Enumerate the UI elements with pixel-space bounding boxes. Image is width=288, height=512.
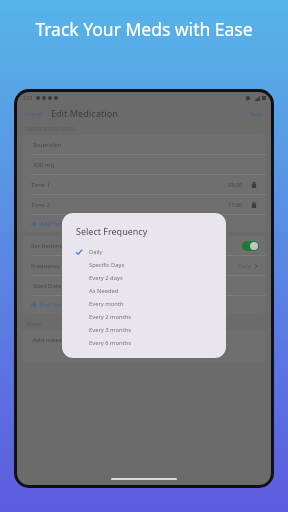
staticText: Every 3 months xyxy=(89,326,132,334)
button[interactable]: Time 1 xyxy=(22,175,266,194)
button[interactable]: Delete time xyxy=(249,180,258,189)
button[interactable]: Start Date xyxy=(22,276,266,295)
staticText: Daily xyxy=(89,248,103,256)
staticText: Frequency xyxy=(31,262,61,270)
staticText: End Date xyxy=(40,301,66,309)
staticText: Every 2 months xyxy=(89,313,132,321)
button[interactable]: Add notes xyxy=(22,330,266,349)
staticText: Every 6 months xyxy=(89,339,132,347)
button[interactable]: Save xyxy=(249,109,264,118)
staticText: Time 2 xyxy=(31,201,50,209)
staticText: Edit Medication xyxy=(51,107,118,119)
staticText: Start Date xyxy=(33,282,62,290)
staticText: Every month xyxy=(89,300,124,308)
staticText: Specific Days xyxy=(89,261,125,269)
button[interactable]: Every 2 months xyxy=(76,310,226,323)
button[interactable]: Add Time xyxy=(22,215,266,232)
staticText: MEDICATION INFO xyxy=(26,125,75,132)
staticText: Every 2 days xyxy=(89,274,123,282)
staticText: Daily xyxy=(238,262,251,269)
button[interactable]: Every 3 months xyxy=(76,323,226,336)
button[interactable]: Every 6 months xyxy=(76,336,226,349)
staticText: 400 mg xyxy=(33,161,55,169)
staticText: Notes xyxy=(26,320,42,327)
staticText: Add notes xyxy=(33,336,62,344)
button[interactable]: Time 2 xyxy=(22,195,266,214)
staticText: Select Frequency xyxy=(76,225,148,237)
staticText: 17:00 xyxy=(228,201,243,208)
button[interactable]: Specific Days xyxy=(76,258,226,271)
staticText: 2:51 xyxy=(23,95,33,102)
staticText: Save xyxy=(250,110,263,117)
button[interactable]: Every 2 days xyxy=(76,271,226,284)
staticText: Set Reminders xyxy=(31,242,72,250)
button[interactable]: Cancel xyxy=(24,109,44,118)
button[interactable]: Frequency xyxy=(22,256,266,275)
button[interactable]: Set Reminders xyxy=(22,236,266,255)
button[interactable]: As Needed xyxy=(76,284,226,297)
button[interactable]: Every month xyxy=(76,297,226,310)
button[interactable]: End Date xyxy=(22,296,266,313)
staticText: Ibuprofen xyxy=(33,141,62,149)
staticText: Track Your Meds with Ease xyxy=(18,17,270,41)
staticText: Time 1 xyxy=(31,181,50,189)
staticText: Cancel xyxy=(25,110,43,117)
staticText: 08:00 xyxy=(228,181,243,188)
button[interactable]: Daily xyxy=(76,245,226,258)
staticText: As Needed xyxy=(89,287,119,295)
staticText: Add Time xyxy=(40,220,67,228)
button[interactable]: Delete time xyxy=(249,200,258,209)
